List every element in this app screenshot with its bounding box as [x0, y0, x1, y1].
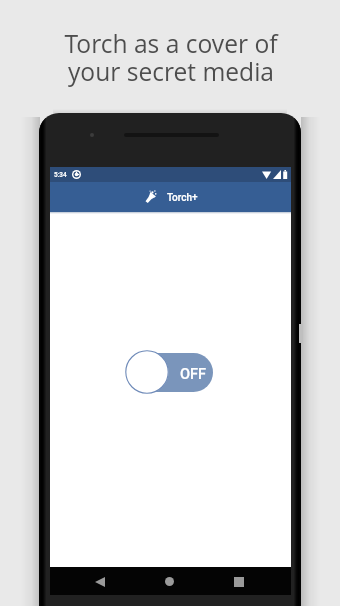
staticText: 5:34 — [54, 171, 67, 179]
button[interactable]: Back — [86, 568, 113, 595]
staticText: OFF — [180, 365, 207, 382]
button[interactable]: Home — [156, 568, 183, 595]
staticText: Torch as a cover of your secret media — [64, 27, 278, 88]
button[interactable]: Recent apps — [225, 568, 252, 595]
staticText: Torch+ — [167, 192, 198, 204]
button[interactable]: Torch off — [125, 350, 213, 394]
